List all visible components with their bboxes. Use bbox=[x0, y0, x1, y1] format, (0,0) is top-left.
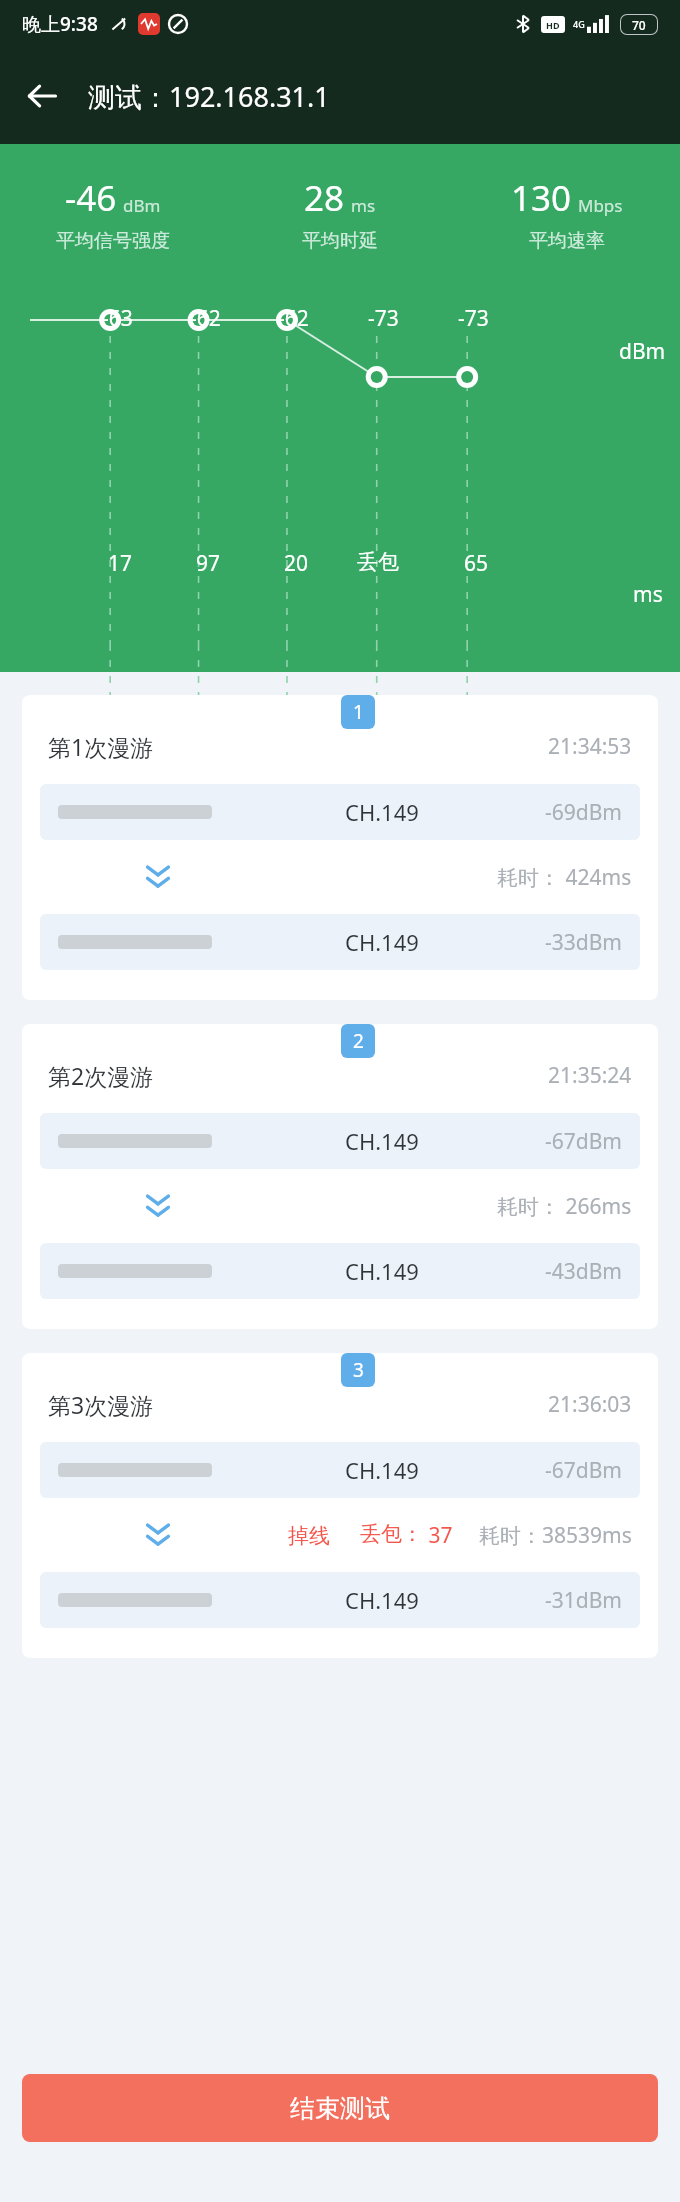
button[interactable]: 结束测试 bbox=[22, 2074, 658, 2142]
staticText: -67dBm bbox=[545, 1456, 622, 1485]
staticText: -43dBm bbox=[545, 1257, 622, 1286]
staticText: dBm bbox=[123, 194, 161, 217]
staticText: 平均速率 bbox=[529, 229, 605, 253]
staticText: -31dBm bbox=[545, 1586, 622, 1615]
staticText: CH.149 bbox=[345, 927, 419, 957]
staticText: -69dBm bbox=[545, 798, 622, 827]
button[interactable]: Back bbox=[14, 68, 70, 124]
staticText: 37 bbox=[423, 1521, 453, 1550]
staticText: -62 bbox=[278, 304, 309, 333]
staticText: Mbps bbox=[578, 194, 623, 217]
staticText: -63 bbox=[102, 304, 133, 333]
staticText: 20 bbox=[284, 549, 309, 578]
staticText: CH.149 bbox=[345, 1455, 419, 1485]
staticText: CH.149 bbox=[345, 1126, 419, 1156]
staticText: 2 bbox=[353, 1028, 364, 1054]
staticText: 平均时延 bbox=[302, 229, 378, 253]
staticText: 70 bbox=[632, 17, 646, 33]
staticText: 结束测试 bbox=[290, 2093, 390, 2124]
staticText: -73 bbox=[368, 304, 399, 333]
staticText: 掉线 bbox=[288, 1523, 330, 1549]
button[interactable]: 第2次漫游 bbox=[22, 1024, 658, 1329]
staticText: 测试：192.168.31.1 bbox=[88, 78, 330, 115]
staticText: 28 bbox=[304, 174, 345, 222]
staticText: CH.149 bbox=[345, 797, 419, 827]
staticText: 21:34:53 bbox=[548, 732, 632, 761]
staticText: -33dBm bbox=[545, 928, 622, 957]
staticText: ms bbox=[633, 580, 663, 609]
staticText: 4G bbox=[573, 18, 585, 30]
staticText: 丢包： bbox=[360, 1521, 423, 1547]
staticText: -46 bbox=[65, 174, 117, 222]
staticText: 3 bbox=[353, 1357, 364, 1383]
staticText: 21:36:03 bbox=[548, 1390, 632, 1419]
staticText: 130 bbox=[511, 174, 572, 222]
staticText: CH.149 bbox=[345, 1256, 419, 1286]
button[interactable]: 第3次漫游 bbox=[22, 1353, 658, 1658]
staticText: 第1次漫游 bbox=[48, 731, 154, 762]
staticText: 1 bbox=[353, 699, 364, 725]
staticText: -62 bbox=[190, 304, 221, 333]
staticText: 平均信号强度 bbox=[56, 229, 170, 253]
staticText: 第2次漫游 bbox=[48, 1060, 154, 1091]
staticText: 17 bbox=[108, 549, 133, 578]
staticText: ms bbox=[351, 194, 376, 217]
staticText: 97 bbox=[196, 549, 221, 578]
staticText: 21:35:24 bbox=[548, 1061, 632, 1090]
staticText: -73 bbox=[458, 304, 489, 333]
staticText: 第3次漫游 bbox=[48, 1389, 154, 1420]
staticText: 耗时：38539ms bbox=[479, 1521, 632, 1550]
staticText: dBm bbox=[619, 337, 666, 366]
staticText: 耗时： 424ms bbox=[497, 863, 632, 892]
button[interactable]: 第1次漫游 bbox=[22, 695, 658, 1000]
staticText: -67dBm bbox=[545, 1127, 622, 1156]
staticText: 丢包 bbox=[357, 549, 399, 575]
staticText: HD bbox=[546, 19, 560, 31]
staticText: CH.149 bbox=[345, 1585, 419, 1615]
staticText: 耗时： 266ms bbox=[497, 1192, 632, 1221]
staticText: 65 bbox=[464, 549, 489, 578]
staticText: 晚上9:38 bbox=[22, 11, 98, 37]
